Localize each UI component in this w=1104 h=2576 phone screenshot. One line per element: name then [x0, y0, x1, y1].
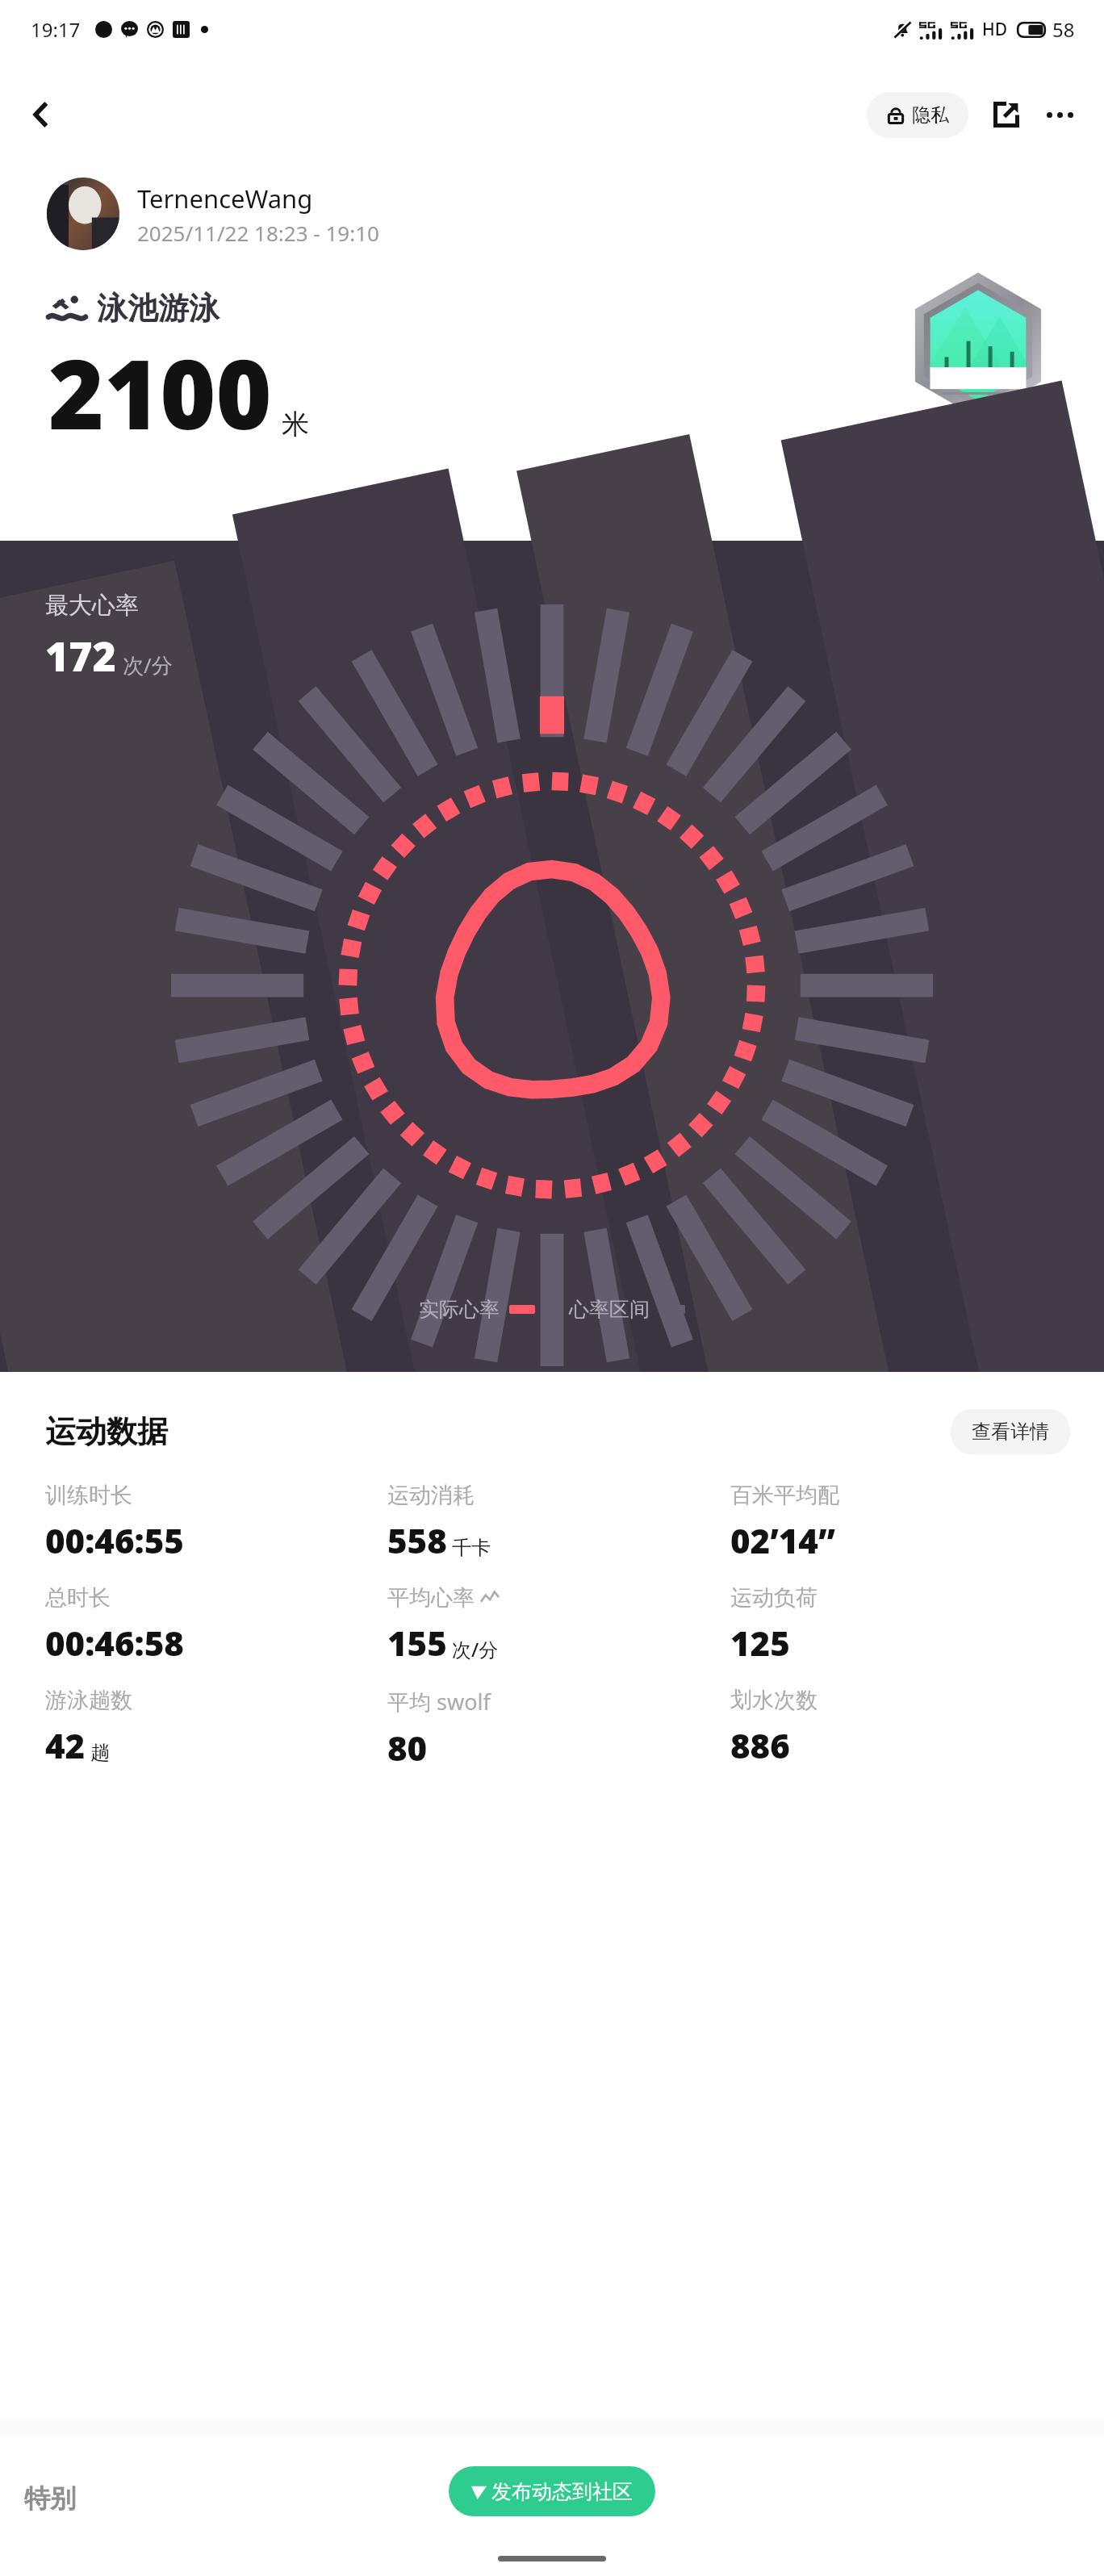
- staticText: 运动负荷: [730, 1584, 818, 1612]
- staticText: 游泳趟数: [45, 1687, 132, 1714]
- staticText: 心率区间: [569, 1297, 650, 1322]
- button[interactable]: Share: [983, 91, 1030, 138]
- staticText: 次/分: [452, 1636, 499, 1662]
- staticText: 125: [730, 1620, 790, 1666]
- staticText: 00:46:58: [45, 1620, 184, 1666]
- button[interactable]: Avatar: [47, 178, 119, 250]
- staticText: 58: [1052, 16, 1075, 43]
- button[interactable]: Back: [15, 89, 66, 140]
- staticText: 百米平均配: [730, 1482, 839, 1509]
- staticText: 运动消耗: [387, 1482, 475, 1509]
- button[interactable]: 发布动态到社区: [449, 2466, 655, 2516]
- staticText: TernenceWang: [137, 182, 313, 215]
- staticText: 2025/11/22 18:23 - 19:10: [137, 219, 379, 247]
- staticText: 发布动态到社区: [491, 2479, 633, 2504]
- staticText: 泳池游泳: [97, 289, 220, 328]
- staticText: HD: [982, 18, 1008, 41]
- staticText: 最大心率: [45, 591, 139, 621]
- staticText: 155: [387, 1620, 447, 1666]
- staticText: 总时长: [45, 1584, 111, 1612]
- staticText: 特别: [24, 2482, 76, 2515]
- button[interactable]: Weekend badge: [899, 266, 1057, 424]
- staticText: 划水次数: [730, 1687, 818, 1714]
- staticText: 平均心率: [387, 1584, 475, 1612]
- staticText: 42: [45, 1722, 86, 1768]
- staticText: 米: [282, 407, 309, 441]
- staticText: 02’14”: [730, 1517, 835, 1563]
- button[interactable]: More options: [1036, 91, 1083, 138]
- staticText: 00:46:55: [45, 1517, 184, 1563]
- staticText: 查看详情: [972, 1420, 1049, 1444]
- staticText: 886: [730, 1722, 790, 1768]
- staticText: 隐私: [912, 103, 949, 127]
- button[interactable]: 查看详情: [951, 1409, 1070, 1454]
- staticText: 172: [45, 629, 116, 684]
- staticText: 80: [387, 1725, 428, 1771]
- staticText: 趟: [90, 1741, 110, 1765]
- staticText: 训练时长: [45, 1482, 132, 1509]
- staticText: 平均 swolf: [387, 1687, 491, 1717]
- staticText: 19:17: [31, 16, 81, 43]
- staticText: 次/分: [123, 650, 173, 680]
- staticText: 2100: [48, 328, 272, 458]
- staticText: 558: [387, 1517, 447, 1563]
- staticText: 运动数据: [45, 1412, 168, 1451]
- button[interactable]: 隐私: [867, 92, 968, 138]
- staticText: 实际心率: [419, 1297, 500, 1322]
- staticText: 千卡: [452, 1536, 491, 1560]
